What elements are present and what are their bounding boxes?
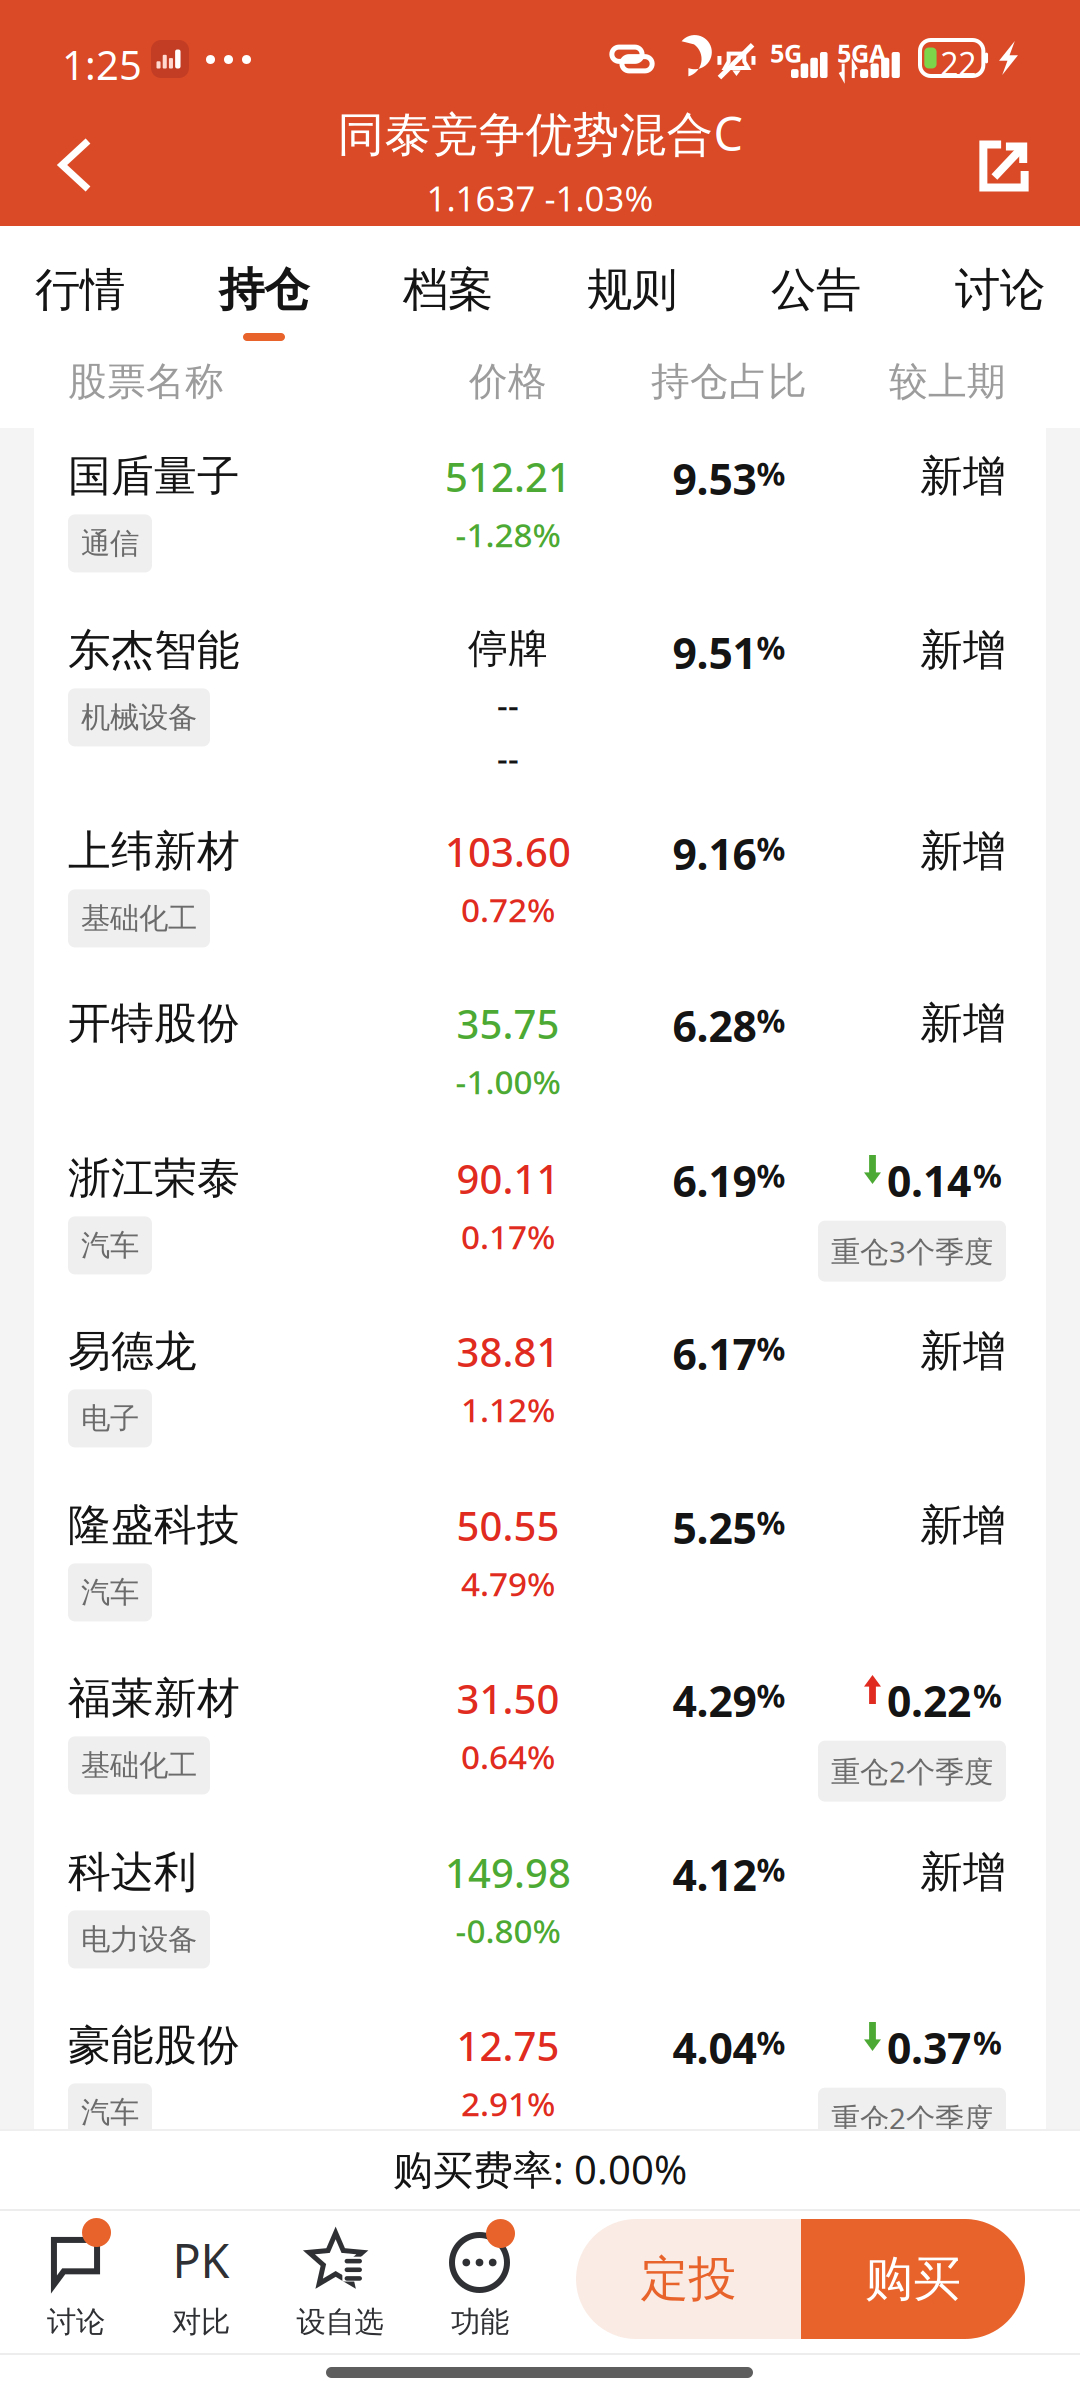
button[interactable]: 公告 [724,226,908,352]
staticText: 购买费率: 0.00% [393,2142,687,2195]
staticText: 9.16 [672,825,756,882]
staticText: 讨论 [955,262,1045,318]
staticText: % [756,1154,785,1196]
staticText: -- [497,682,519,726]
staticText: 512.21 [445,450,571,503]
staticText: 规则 [587,262,677,318]
staticText: 新增 [920,450,1006,502]
staticText: 0.37 [887,2019,971,2076]
staticText: % [973,2021,1002,2063]
staticText: % [756,626,785,668]
staticText: % [756,1848,785,1890]
staticText: 汽车 [81,1227,139,1263]
button[interactable]: PK [131,2209,271,2353]
button[interactable]: 科达利 [0,1824,1080,1997]
staticText: % [756,1501,785,1543]
staticText: 2.91% [461,2081,555,2125]
staticText: 上纬新材 [68,825,240,877]
staticText: % [973,1674,1002,1716]
button[interactable]: Share [949,111,1059,221]
staticText: 4.12 [672,1846,756,1903]
staticText: 电子 [81,1400,139,1436]
staticText: -0.80% [455,1908,560,1952]
staticText: 机械设备 [81,699,197,735]
staticText: 149.98 [445,1846,571,1899]
staticText: 0.22 [887,1672,971,1729]
staticText: 重仓2个季度 [831,2099,993,2138]
staticText: 0.17% [461,1214,555,1258]
staticText: % [756,1327,785,1369]
staticText: 4.79% [461,1561,555,1605]
button[interactable]: 上纬新材 [0,803,1080,975]
staticText: -1.28% [455,512,560,556]
button[interactable]: 购买 [801,2219,1025,2339]
staticText: 股票名称 [68,358,224,405]
button[interactable]: 规则 [540,226,724,352]
button[interactable]: 浙江荣泰 [0,1130,1080,1303]
staticText: % [756,2021,785,2063]
button[interactable]: 福莱新材 [0,1650,1080,1824]
button[interactable]: 东杰智能 [0,602,1080,803]
staticText: 浙江荣泰 [68,1152,240,1204]
staticText: 90.11 [456,1152,559,1205]
button[interactable]: 讨论 [6,2209,146,2353]
staticText: 持仓占比 [651,358,807,405]
staticText: 隆盛科技 [68,1499,240,1551]
staticText: 档案 [403,262,493,318]
staticText: 9.53 [672,450,756,507]
staticText: 重仓2个季度 [831,1752,993,1791]
staticText: 基础化工 [81,900,197,936]
staticText: 12.75 [456,2019,559,2072]
staticText: 同泰竞争优势混合C [337,102,742,164]
staticText: 国盾量子 [68,450,240,502]
button[interactable]: 行情 [0,226,172,352]
staticText: 新增 [920,624,1006,676]
staticText: 4.29 [672,1672,756,1729]
staticText: 重仓3个季度 [831,1232,993,1271]
staticText: 新增 [920,1499,1006,1551]
button[interactable]: 开特股份 [0,975,1080,1130]
button[interactable]: 豪能股份 [0,1997,1080,2171]
staticText: 35.75 [456,997,559,1050]
staticText: 行情 [35,262,125,318]
button[interactable]: 定投 [576,2219,801,2339]
staticText: 易德龙 [68,1325,197,1377]
button[interactable]: 持仓 [172,226,356,352]
button[interactable]: 设自选 [270,2209,410,2353]
staticText: 1:25 [62,38,142,91]
staticText: 新增 [920,997,1006,1049]
button[interactable]: 隆盛科技 [0,1477,1080,1650]
staticText: 功能 [451,2304,509,2340]
staticText: 5G [770,36,802,70]
staticText: PK [172,2229,229,2291]
staticText: 9.51 [672,624,756,681]
button[interactable]: 功能 [410,2209,550,2353]
staticText: 定投 [640,2249,736,2308]
button[interactable]: Back [19,110,129,220]
staticText: 对比 [172,2304,230,2340]
staticText: 通信 [81,525,139,561]
staticText: 停牌 [468,624,548,673]
button[interactable]: 国盾量子 [0,428,1080,602]
staticText: 38.81 [456,1325,559,1378]
staticText: 设自选 [296,2304,383,2340]
staticText: 科达利 [68,1846,197,1898]
staticText: 电力设备 [81,1921,197,1957]
button[interactable]: 档案 [356,226,540,352]
staticText: 新增 [920,1325,1006,1377]
staticText: 1.1637 -1.03% [426,175,653,221]
staticText: 东杰智能 [68,624,240,676]
staticText: 开特股份 [68,997,240,1049]
staticText: 0.64% [461,1734,555,1778]
staticText: % [973,1154,1002,1196]
staticText: 汽车 [81,1574,139,1610]
staticText: 讨论 [47,2304,105,2340]
button[interactable]: 讨论 [908,226,1080,352]
staticText: 5GA [837,36,887,70]
button[interactable]: 易德龙 [0,1303,1080,1477]
staticText: 50.55 [456,1499,559,1552]
staticText: 豪能股份 [68,2019,240,2071]
staticText: % [756,827,785,869]
staticText: 价格 [469,358,547,405]
staticText: 新增 [920,1846,1006,1898]
